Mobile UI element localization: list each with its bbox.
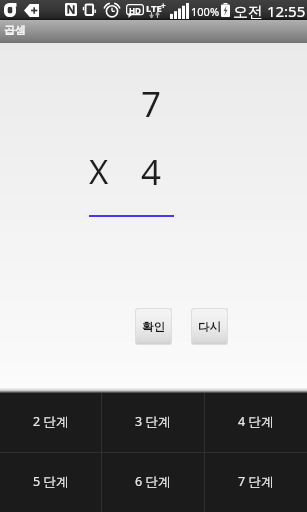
staticText: LTE [146, 2, 162, 15]
button[interactable]: 2 단계 [0, 393, 101, 452]
button[interactable]: 7 단계 [205, 453, 307, 512]
button[interactable]: 5 단계 [0, 453, 101, 512]
staticText: 4 단계 [238, 413, 274, 430]
staticText: 4 [141, 148, 162, 196]
staticText: 곱셈 [4, 23, 26, 37]
staticText: 100% [191, 4, 220, 19]
staticText: 2 단계 [33, 413, 69, 430]
staticText: 7 단계 [238, 473, 274, 490]
button[interactable]: 4 단계 [205, 393, 307, 452]
staticText: X [89, 149, 109, 194]
staticText: 확인 [142, 320, 165, 334]
staticText: 3 단계 [135, 413, 171, 430]
staticText: 다시 [198, 320, 221, 334]
button[interactable]: 6 단계 [102, 453, 204, 512]
button[interactable]: 확인 [136, 309, 171, 344]
staticText: 6 단계 [135, 473, 171, 490]
button[interactable]: 다시 [192, 309, 227, 344]
staticText: HD [129, 5, 141, 16]
staticText: 7 [141, 80, 162, 128]
staticText: 5 단계 [33, 473, 69, 490]
staticText: 오전 12:55 [233, 1, 306, 21]
staticText: + [161, 0, 166, 11]
button[interactable]: 3 단계 [102, 393, 204, 452]
